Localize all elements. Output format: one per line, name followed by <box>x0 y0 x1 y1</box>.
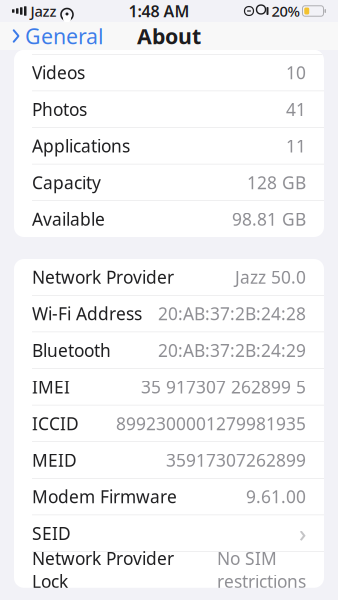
staticText: 98.81 GB <box>232 207 306 230</box>
staticText: 128 GB <box>247 171 306 194</box>
staticText: 1:48 AM <box>128 0 189 22</box>
staticText: Videos <box>32 61 85 84</box>
staticText: 8992300001279981935 <box>116 412 306 435</box>
staticText: Photos <box>32 98 87 121</box>
staticText: Available <box>32 207 105 230</box>
staticText: MEID <box>32 448 77 471</box>
button[interactable]: General <box>0 18 104 54</box>
staticText: IMEI <box>32 375 70 398</box>
button[interactable]: Wi-Fi Address <box>14 296 324 332</box>
staticText: 9.61.00 <box>246 485 306 508</box>
staticText: Bluetooth <box>32 339 111 362</box>
staticText: 20% <box>271 1 299 21</box>
staticText: General <box>25 22 104 50</box>
button[interactable]: Applications <box>14 128 324 164</box>
button[interactable]: IMEI <box>14 369 324 405</box>
staticText: 41 <box>286 98 306 121</box>
staticText: Applications <box>32 134 130 157</box>
button[interactable]: Capacity <box>14 164 324 200</box>
button[interactable]: Videos <box>14 55 324 91</box>
staticText: SEID <box>32 522 71 545</box>
staticText: Modem Firmware <box>32 485 177 508</box>
staticText: 10 <box>286 61 306 84</box>
staticText: › <box>299 518 306 548</box>
staticText: Network Provider Lock <box>32 547 174 593</box>
staticText: 35 917307 262899 5 <box>141 375 306 398</box>
staticText: Wi-Fi Address <box>32 302 142 325</box>
staticText: No SIM restrictions <box>217 547 306 593</box>
button[interactable]: Bluetooth <box>14 332 324 368</box>
staticText: Jazz 50.0 <box>235 265 306 288</box>
staticText: Network Provider <box>32 265 174 288</box>
staticText: 11 <box>286 134 306 157</box>
button[interactable]: Network Provider <box>14 259 324 295</box>
staticText: About <box>137 22 201 50</box>
staticText: Jazz <box>30 1 56 21</box>
button[interactable]: Available <box>14 201 324 237</box>
button[interactable]: Photos <box>14 91 324 127</box>
button[interactable]: SEID <box>14 515 324 551</box>
button[interactable]: MEID <box>14 442 324 478</box>
button[interactable]: ICCID <box>14 405 324 441</box>
staticText: 20:AB:37:2B:24:28 <box>158 302 306 325</box>
staticText: 35917307262899 <box>166 448 306 471</box>
button[interactable]: Network Provider Lock <box>14 552 324 588</box>
staticText: 20:AB:37:2B:24:29 <box>158 339 306 362</box>
button[interactable]: Modem Firmware <box>14 479 324 515</box>
staticText: ICCID <box>32 412 79 435</box>
staticText: Capacity <box>32 171 101 194</box>
